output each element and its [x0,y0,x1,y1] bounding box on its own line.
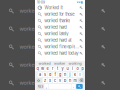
staticText: worked hard at [20,80,58,86]
button[interactable]: . [72,84,76,89]
staticText: worked hard [44,25,67,30]
button[interactable]: r [50,66,55,71]
button[interactable]: t [55,66,60,71]
staticText: worked hard at [44,38,71,43]
staticText: ⇧ [37,78,41,83]
staticText: ?123 [37,85,43,88]
staticText: worked lately [44,31,68,36]
staticText: worked hard today [44,51,78,56]
staticText: m [74,78,77,83]
button[interactable]: k [73,72,77,77]
button[interactable]: worked hard at [35,37,85,43]
staticText: c [54,78,56,83]
staticText: worked lately [20,62,53,68]
button[interactable]: j [68,72,72,77]
button[interactable]: ?123 [37,84,44,89]
staticText: f [54,72,55,77]
button[interactable]: f [53,72,57,77]
button[interactable]: q [35,66,40,71]
button[interactable]: worked fine episodically [35,43,85,50]
staticText: . [73,84,74,89]
staticText: t [57,66,58,71]
staticText: n [69,78,71,83]
button[interactable]: a [38,72,42,77]
button[interactable]: x [48,78,52,83]
staticText: worked fine episodically [44,44,79,49]
staticText: worked hard [20,44,51,50]
button[interactable]: worked thanks [35,17,85,24]
button[interactable]: d [48,72,52,77]
staticText: v [59,78,61,83]
staticText: i [72,66,73,71]
button[interactable]: Worked It [35,4,85,11]
button[interactable]: c [53,78,57,83]
button[interactable]: , [44,84,48,89]
button[interactable]: worked for those [35,11,85,17]
button[interactable]: Search [76,84,83,89]
button[interactable]: worked lately [35,30,85,37]
staticText: l [80,72,81,77]
staticText: ⌫ [79,79,83,82]
button[interactable]: v [58,78,62,83]
staticText: 10:09 [37,0,45,4]
staticText: o [77,66,79,71]
button[interactable]: worked hard [35,24,85,30]
staticText: Worked It [44,5,62,10]
button[interactable]: e [45,66,50,71]
staticText: k [74,72,76,77]
button[interactable]: n [68,78,72,83]
staticText: worked thanks [44,18,70,23]
staticText: worked for those [44,12,74,17]
button[interactable]: s [43,72,47,77]
staticText: h [64,72,66,77]
button[interactable]: h [63,72,67,77]
button[interactable]: u [65,66,70,71]
staticText: x [49,78,51,83]
button[interactable]: o [75,66,80,71]
staticText: working [68,61,81,66]
button[interactable]: b [63,78,67,83]
button[interactable]: l [78,72,82,77]
staticText: worked for those [20,8,63,14]
staticText: y [61,66,63,71]
staticText: worked thanks [20,26,57,32]
staticText: e [46,66,48,71]
button[interactable]: ⇧ [35,78,42,83]
staticText: p [82,66,84,71]
staticText: b [64,78,66,83]
staticText: ▾▾▮ [77,0,83,4]
staticText: r [52,66,53,71]
button[interactable]: i [70,66,75,71]
button[interactable]: w [40,66,45,71]
staticText: z [44,78,46,83]
staticText: worked [38,61,50,66]
staticText: s [44,72,46,77]
button[interactable]: p [80,66,85,71]
staticText: q [36,66,38,71]
staticText: d [49,72,51,77]
button[interactable]: z [43,78,47,83]
button[interactable]: ⌫ [78,78,84,83]
staticText: u [66,66,68,71]
button[interactable]: g [58,72,62,77]
staticText: w [41,66,44,71]
button[interactable]: worked hard today [35,50,85,56]
staticText: , [46,84,47,89]
staticText: worker [54,61,65,66]
staticText: g [59,72,61,77]
staticText: a [39,72,41,77]
button[interactable]: y [60,66,65,71]
button[interactable]: m [73,78,77,83]
